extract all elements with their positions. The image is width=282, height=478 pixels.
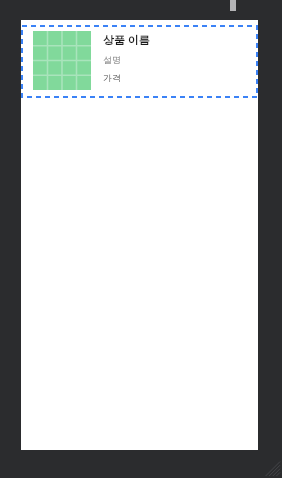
staticText: 상품 이름: [103, 32, 150, 47]
button[interactable]: Product image: [21, 25, 258, 98]
staticText: 가격: [103, 72, 121, 83]
staticText: 설명: [103, 54, 121, 65]
other: Product image: [33, 31, 91, 90]
